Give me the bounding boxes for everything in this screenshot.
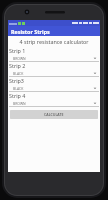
other: Select colour band for Strip 4 <box>93 101 97 105</box>
staticText: BROWN <box>13 56 26 61</box>
staticText: BROWN <box>13 101 26 106</box>
button[interactable]: BLACK <box>8 84 100 92</box>
staticText: CALCULATE <box>44 112 64 117</box>
button[interactable]: BROWN <box>8 99 100 107</box>
staticText: Strip 1 <box>9 47 26 54</box>
staticText: Strip 2 <box>9 62 26 69</box>
button[interactable]: BLACK <box>8 69 100 77</box>
button[interactable]: BROWN <box>8 54 100 62</box>
staticText: Resistor Strips <box>11 28 50 35</box>
staticText: BLACK <box>13 71 24 76</box>
staticText: BLACK <box>13 86 24 91</box>
staticText: Strip3 <box>9 77 24 84</box>
other: Select colour band for Strip3 <box>93 86 97 90</box>
other: Select colour band for Strip 2 <box>93 71 97 75</box>
other: Select colour band for Strip 1 <box>93 56 97 60</box>
button[interactable]: CALCULATE <box>10 110 98 119</box>
button[interactable]: Resistor Strips <box>8 26 100 36</box>
staticText: Strip 4 <box>9 92 26 99</box>
staticText: 4 strip resistance calculator <box>19 38 89 45</box>
